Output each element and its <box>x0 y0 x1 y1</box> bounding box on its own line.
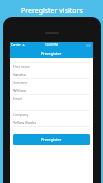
staticText: Preregister <box>41 51 62 56</box>
staticText: William <box>13 88 27 93</box>
staticText: Preregister visitors <box>21 6 83 16</box>
staticText: Yellow Books <box>13 120 37 125</box>
staticText: First name <box>13 64 30 69</box>
staticText: Preregister <box>41 137 62 142</box>
staticText: Carrier <box>11 43 21 47</box>
staticText: Sandra <box>13 72 26 77</box>
staticText: 12:30 PM <box>45 43 58 47</box>
staticText: Surname <box>13 80 28 85</box>
button[interactable]: Preregister <box>13 134 90 145</box>
staticText: Company <box>13 112 29 117</box>
staticText: Email <box>13 96 22 101</box>
